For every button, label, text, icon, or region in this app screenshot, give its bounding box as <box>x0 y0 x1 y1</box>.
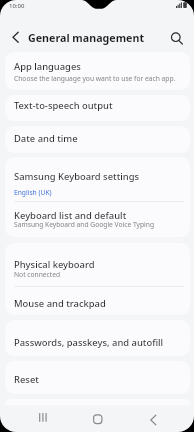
staticText: Reset <box>14 373 39 386</box>
staticText: Physical keyboard <box>14 258 95 271</box>
button[interactable] <box>167 28 187 48</box>
button[interactable] <box>6 28 24 46</box>
button[interactable] <box>5 126 190 153</box>
staticText: App languages <box>14 60 81 73</box>
staticText: Date and time <box>14 132 78 145</box>
staticText: Text-to-speech output <box>14 99 113 112</box>
button[interactable] <box>143 408 164 428</box>
button[interactable] <box>5 157 190 237</box>
button[interactable] <box>5 52 190 90</box>
staticText: Mouse and trackpad <box>14 297 106 310</box>
staticText: 10:00 <box>9 2 25 10</box>
staticText: Keyboard list and default <box>14 209 127 222</box>
staticText: English (UK) <box>14 188 52 197</box>
staticText: General management <box>28 31 145 46</box>
staticText: Not connected <box>14 270 61 279</box>
staticText: Samsung Keyboard and Google Voice Typing <box>14 220 155 229</box>
staticText: Samsung Keyboard settings <box>14 170 140 183</box>
staticText: Passwords, passkeys, and autofill <box>14 336 164 349</box>
button[interactable] <box>5 95 190 121</box>
button[interactable] <box>5 320 190 356</box>
button[interactable] <box>33 408 54 428</box>
button[interactable] <box>5 243 190 315</box>
button[interactable] <box>87 408 108 428</box>
staticText: Choose the language you want to use for … <box>14 74 176 83</box>
button[interactable] <box>5 361 190 394</box>
